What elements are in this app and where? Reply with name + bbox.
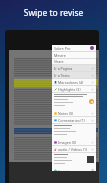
staticText: Comentarios (1) — [58, 118, 91, 123]
button[interactable]: Marcadores (4) — [52, 79, 96, 85]
staticText: Ir a Pagina — [54, 66, 91, 71]
staticText: Swipe to revise — [0, 7, 107, 19]
button[interactable]: Highlights (3) — [52, 86, 96, 92]
staticText: Ir a Texto — [54, 73, 91, 78]
button[interactable]: Sobre Pro — [52, 45, 96, 51]
button[interactable] — [52, 124, 96, 139]
button[interactable]: Comentarios (1) — [52, 117, 96, 123]
button[interactable] — [52, 153, 96, 169]
staticText: Marcadores (4) — [58, 80, 91, 85]
staticText: Notes (0) — [58, 111, 91, 116]
button[interactable]: Mestre — [52, 52, 96, 58]
button[interactable]: Imagen (0) — [52, 139, 96, 145]
staticText: Imagen (0) — [58, 140, 91, 145]
staticText: audio / Videos (1) — [58, 147, 91, 152]
staticText: Statistics — [58, 169, 91, 171]
button[interactable]: audio / Videos (1) — [52, 146, 96, 152]
staticText: Share — [54, 59, 94, 64]
button[interactable]: Share — [52, 59, 96, 64]
button[interactable]: Notes (0) — [52, 110, 96, 116]
staticText: Mestre — [54, 53, 94, 58]
button[interactable]: Statistics — [52, 169, 96, 171]
staticText: Sobre Pro — [54, 46, 90, 51]
button[interactable]: Ir a Pagina — [52, 65, 96, 71]
button[interactable] — [52, 93, 96, 110]
staticText: Highlights (3) — [58, 87, 91, 92]
button[interactable]: Ir a Texto — [52, 72, 96, 78]
